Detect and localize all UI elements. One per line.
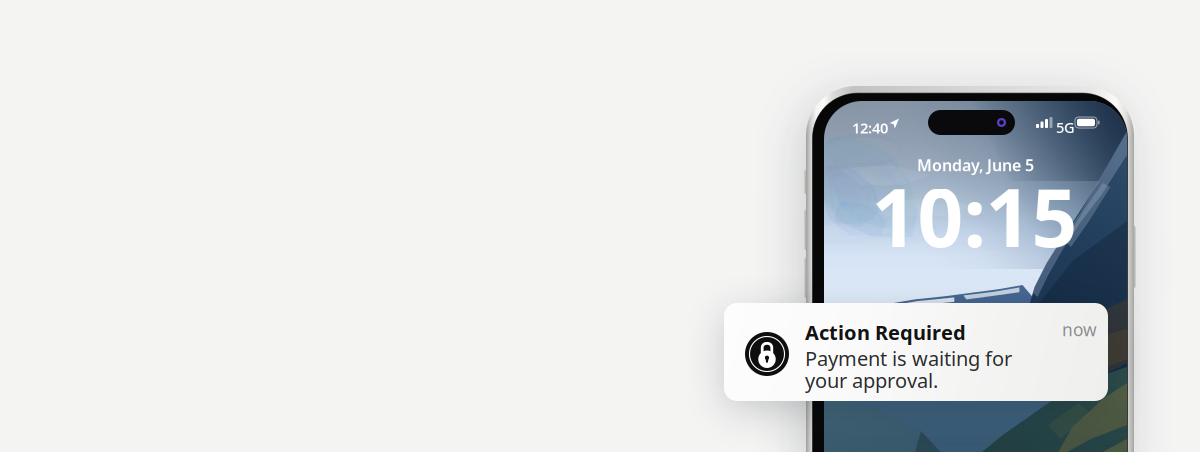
staticText: Payment is waiting for bbox=[805, 345, 1012, 372]
staticText: 12:40 bbox=[852, 118, 888, 137]
staticText: Monday, June 5 bbox=[917, 154, 1034, 176]
button[interactable]: Action Required bbox=[724, 303, 1108, 401]
staticText: Action Required bbox=[805, 319, 966, 346]
staticText: 5G bbox=[1056, 117, 1075, 137]
staticText: your approval. bbox=[805, 367, 938, 394]
staticText: now bbox=[1062, 318, 1097, 341]
staticText: 10:15 bbox=[871, 163, 1077, 269]
